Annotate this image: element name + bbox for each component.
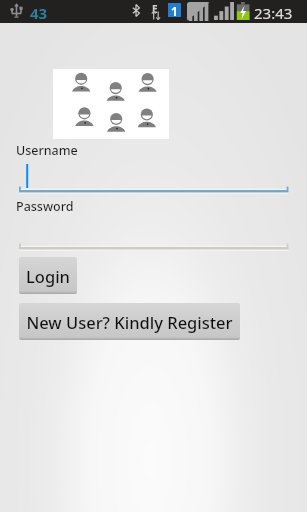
staticText: Password <box>16 198 74 215</box>
button[interactable]: New User? Kindly Register <box>19 303 240 340</box>
staticText: 1 <box>171 3 178 17</box>
button[interactable]: Login <box>19 257 77 294</box>
button[interactable] <box>0 160 307 192</box>
staticText: Login <box>26 265 70 287</box>
staticText: Username <box>16 142 78 159</box>
staticText: New User? Kindly Register <box>26 311 233 333</box>
button[interactable] <box>0 217 307 249</box>
staticText: 43 <box>30 3 48 23</box>
staticText: 23:43 <box>254 3 293 23</box>
staticText: E <box>152 2 158 16</box>
